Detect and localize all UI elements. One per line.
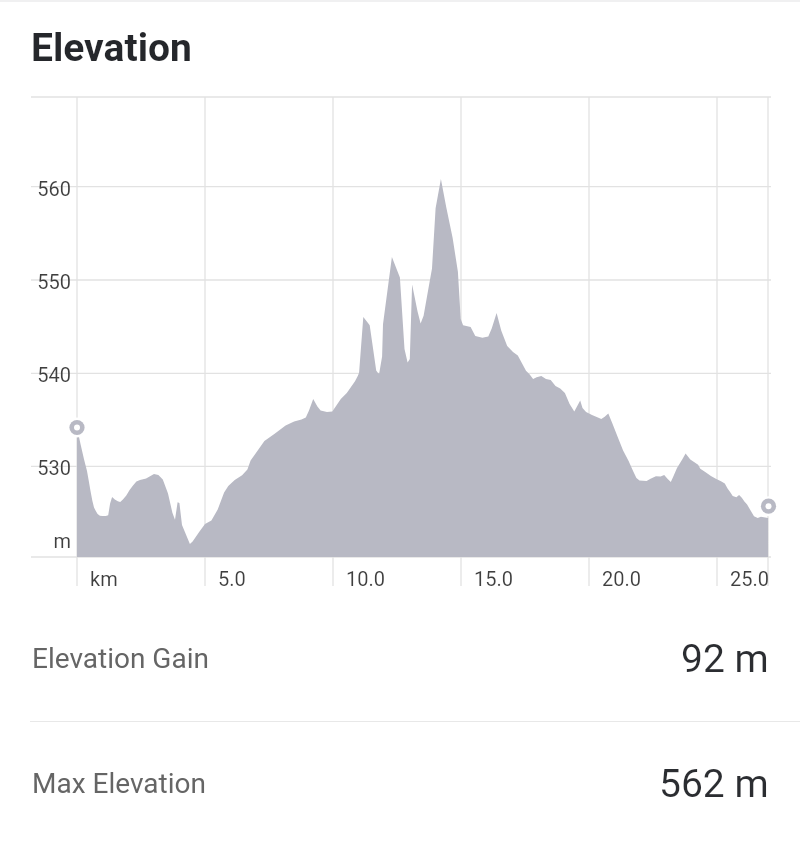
staticText: 15.0 — [474, 567, 513, 590]
staticText: 20.0 — [602, 567, 641, 590]
staticText: 92 m — [681, 636, 769, 682]
staticText: Max Elevation — [32, 767, 206, 800]
staticText: Elevation — [31, 25, 192, 71]
staticText: 530 — [10, 456, 71, 479]
button[interactable]: Max Elevation — [0, 729, 800, 838]
staticText: 560 — [10, 177, 71, 200]
staticText: 550 — [10, 270, 71, 293]
staticText: 540 — [10, 363, 71, 386]
staticText: km — [90, 567, 118, 590]
staticText: 25.0 — [730, 567, 769, 590]
staticText: Elevation Gain — [32, 642, 209, 675]
staticText: 562 m — [659, 761, 769, 807]
staticText: m — [10, 529, 71, 552]
staticText: 10.0 — [346, 567, 385, 590]
other: Elevation profile chart — [0, 0, 800, 849]
staticText: 5.0 — [218, 567, 246, 590]
button[interactable]: Elevation Gain — [0, 604, 800, 713]
